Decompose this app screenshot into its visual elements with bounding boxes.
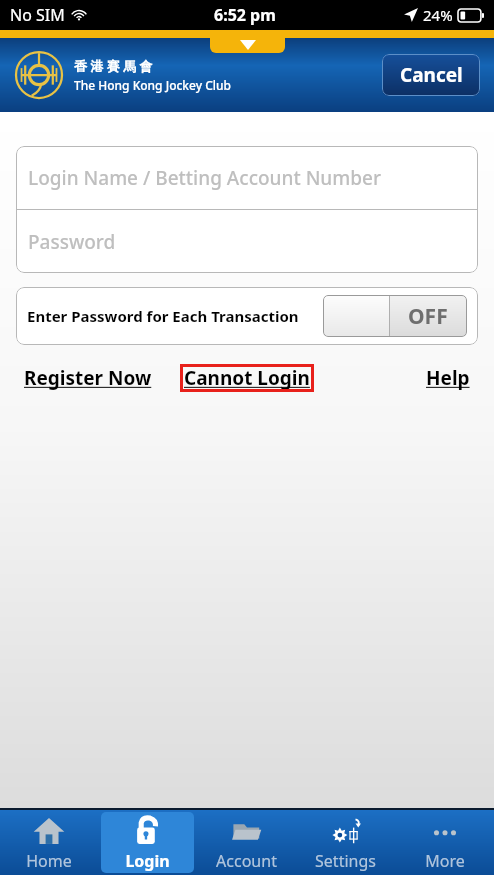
button[interactable]: Settings xyxy=(299,812,392,873)
button[interactable]: Password xyxy=(16,210,478,273)
other: Enter password toggle, off xyxy=(323,295,467,337)
staticText: Login xyxy=(125,850,170,872)
staticText: Cancel xyxy=(400,62,463,88)
button[interactable]: Home xyxy=(3,812,95,873)
staticText: Login Name / Betting Account Number xyxy=(28,165,382,191)
staticText: Home xyxy=(26,850,72,872)
staticText: 6:52 pm xyxy=(214,4,276,26)
staticText: No SIM xyxy=(10,4,65,26)
button[interactable]: Login Name / Betting Account Number xyxy=(16,146,478,209)
staticText: Cannot Login xyxy=(184,365,310,391)
staticText: 香 港 賽 馬 會 xyxy=(74,57,153,75)
button[interactable]: Login xyxy=(101,812,194,873)
staticText: Enter Password for Each Transaction xyxy=(27,306,315,326)
button[interactable]: More xyxy=(398,812,491,873)
button[interactable]: Enter Password for Each Transaction xyxy=(16,287,478,345)
button[interactable]: Expand xyxy=(210,30,285,53)
button[interactable]: Help xyxy=(426,365,470,391)
staticText: The Hong Kong Jockey Club xyxy=(74,77,232,93)
staticText: More xyxy=(425,850,465,872)
button[interactable]: Cancel xyxy=(382,54,480,96)
staticText: Account xyxy=(216,850,277,872)
staticText: Settings xyxy=(315,850,376,872)
button[interactable]: Cannot Login xyxy=(180,364,314,392)
button[interactable]: Register Now xyxy=(24,365,152,391)
staticText: Register Now xyxy=(24,365,152,391)
staticText: Password xyxy=(28,229,116,255)
staticText: OFF xyxy=(408,302,448,331)
staticText: Help xyxy=(426,365,470,391)
button[interactable]: Account xyxy=(200,812,293,873)
staticText: 24% xyxy=(423,5,453,25)
